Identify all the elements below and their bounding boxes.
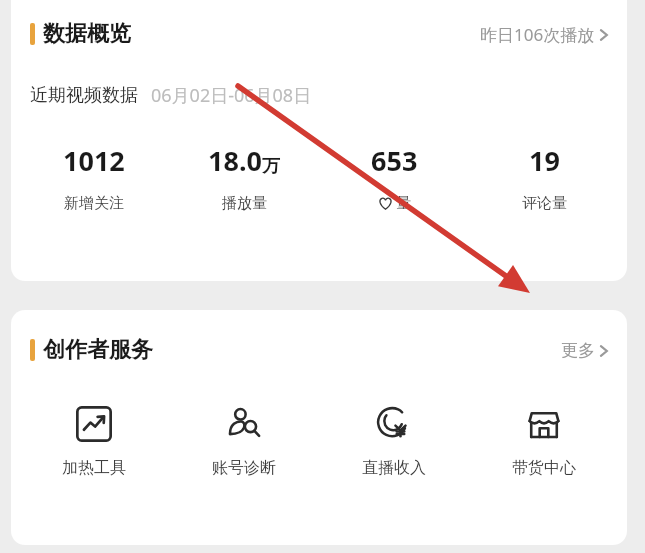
staticText: 更多 xyxy=(561,340,595,361)
button[interactable]: 创作者服务 xyxy=(30,336,153,364)
staticText: 06月02日-06月08日 xyxy=(151,83,312,108)
staticText: 账号诊断 xyxy=(212,458,276,478)
button[interactable]: 18.0 xyxy=(169,142,319,213)
other: 直播收入 xyxy=(376,406,412,442)
button[interactable]: 数据概览 xyxy=(30,20,131,48)
button[interactable]: 加热工具 xyxy=(19,406,169,478)
button[interactable]: 带货中心 xyxy=(469,406,619,478)
staticText: 直播收入 xyxy=(362,458,426,478)
staticText: 评论量 xyxy=(522,194,567,213)
staticText: 带货中心 xyxy=(512,458,576,478)
other: 账号诊断 xyxy=(226,406,262,442)
other: 加热工具 xyxy=(76,406,112,442)
button[interactable]: 19 xyxy=(469,142,619,213)
button[interactable]: 直播收入 xyxy=(319,406,469,478)
staticText: 加热工具 xyxy=(62,458,126,478)
button[interactable]: 1012 xyxy=(19,142,169,213)
staticText: 量 xyxy=(396,194,411,213)
staticText: 18.0 xyxy=(208,142,262,179)
staticText: 653 xyxy=(371,142,418,179)
button[interactable]: 653 xyxy=(319,142,469,213)
staticText: 新增关注 xyxy=(64,194,124,213)
button[interactable]: 账号诊断 xyxy=(169,406,319,478)
staticText: 数据概览 xyxy=(43,20,131,48)
staticText: 播放量 xyxy=(222,194,267,213)
staticText: 创作者服务 xyxy=(43,336,153,364)
staticText: 19 xyxy=(529,142,560,179)
button[interactable]: 更多 xyxy=(561,340,611,361)
staticText: 万 xyxy=(262,155,280,178)
staticText: 昨日106次播放 xyxy=(480,23,595,46)
other: 带货中心 xyxy=(526,406,562,442)
staticText: 1012 xyxy=(63,142,125,179)
staticText: 近期视频数据 xyxy=(30,84,138,107)
button[interactable]: 昨日106次播放 xyxy=(480,23,611,46)
